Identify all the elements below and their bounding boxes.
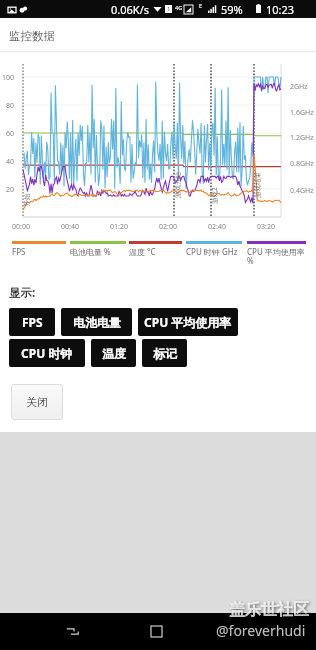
staticText: CPU 平均使用率 % xyxy=(247,246,306,266)
button[interactable]: Back xyxy=(212,613,316,650)
staticText: 关闭 xyxy=(26,395,48,409)
staticText: FPS xyxy=(12,246,26,257)
staticText: 4G xyxy=(175,4,183,11)
staticText: 60 xyxy=(6,129,15,139)
staticText: CPU 时钟 xyxy=(21,345,73,361)
staticText: 电池电量 % xyxy=(70,246,111,257)
button[interactable]: Home xyxy=(136,613,176,650)
staticText: 03:20 xyxy=(257,222,275,232)
staticText: 20 xyxy=(6,185,15,195)
staticText: 2GHz xyxy=(290,82,308,92)
staticText: 0.8GHz xyxy=(290,159,314,169)
staticText: 40 xyxy=(6,157,15,167)
staticText: CPU 时钟 GHz xyxy=(186,246,238,257)
staticText: 温度 xyxy=(102,346,126,361)
staticText: 00:40 xyxy=(61,222,79,232)
staticText: @foreverhudi xyxy=(216,621,306,640)
staticText: 游戏2 xyxy=(210,187,219,204)
staticText: 1.2GHz xyxy=(290,133,314,143)
staticText: 1 xyxy=(167,5,171,13)
staticText: 01:20 xyxy=(110,222,128,232)
staticText: 盖乐世社区 xyxy=(229,600,309,620)
staticText: 10:23 xyxy=(266,2,295,17)
staticText: CPU 平均使用率 xyxy=(144,314,232,330)
button[interactable]: Recent apps xyxy=(52,613,92,650)
staticText: 59% xyxy=(221,2,243,17)
staticText: 监控数据 xyxy=(9,29,55,43)
staticText: 0.06K/s xyxy=(111,2,149,17)
staticText: 电池电量 xyxy=(73,315,121,330)
staticText: 00:00 xyxy=(12,222,30,232)
button[interactable]: 标记 xyxy=(142,339,187,367)
staticText: 标记 xyxy=(153,346,177,361)
button[interactable]: 关闭 xyxy=(11,384,63,420)
staticText: 02:00 xyxy=(159,222,177,232)
staticText: E xyxy=(199,2,203,9)
staticText: 开始 xyxy=(22,193,30,206)
staticText: 100 xyxy=(2,73,15,83)
staticText: 0.4GHz xyxy=(290,186,314,196)
button[interactable]: FPS xyxy=(9,308,55,336)
button[interactable]: CPU 平均使用率 xyxy=(138,308,238,336)
staticText: 02:40 xyxy=(208,222,226,232)
button[interactable]: CPU 时钟 xyxy=(9,339,85,367)
staticText: 温度 °C xyxy=(129,246,156,257)
staticText: 游戏开始 xyxy=(174,172,182,198)
staticText: 80 xyxy=(6,101,15,111)
staticText: 游戏结束 xyxy=(254,172,262,198)
button[interactable]: 电池电量 xyxy=(61,308,132,336)
staticText: 1.6GHz xyxy=(290,108,314,118)
staticText: FPS xyxy=(22,314,43,330)
staticText: 显示: xyxy=(9,285,36,301)
button[interactable]: 温度 xyxy=(91,339,136,367)
